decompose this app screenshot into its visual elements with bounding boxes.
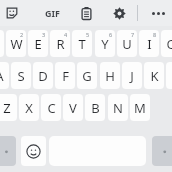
staticText: 5 [86,31,90,38]
button[interactable]: L [166,62,172,89]
button[interactable]: F [55,62,75,89]
staticText: T [78,35,86,53]
staticText: 2 [20,31,24,38]
staticText: O [166,35,172,53]
staticText: 3 [42,31,46,38]
staticText: M [134,99,146,117]
button[interactable]: N [108,94,128,121]
staticText: E [34,35,42,53]
button[interactable]: Backspace [152,136,172,166]
staticText: X [25,99,33,117]
button[interactable]: More options [147,2,169,24]
button[interactable]: I [139,30,159,57]
staticText: F [62,67,69,85]
staticText: J [130,67,134,85]
staticText: R [56,35,65,53]
staticText: Y [101,35,109,53]
button[interactable]: Q [0,30,4,57]
button[interactable]: Y [95,30,115,57]
staticText: B [91,99,100,117]
button[interactable]: U [117,30,137,57]
button[interactable]: K [144,62,164,89]
button[interactable]: E [28,30,48,57]
button[interactable]: J [122,62,142,89]
staticText: Z [3,99,11,117]
staticText: GIF [45,7,60,19]
button[interactable]: M [130,94,150,121]
button[interactable]: O [161,30,172,57]
staticText: K [150,67,159,85]
button[interactable]: Settings [108,2,130,24]
button[interactable]: R [50,30,70,57]
button[interactable]: S [11,62,31,89]
button[interactable]: V [63,94,83,121]
button[interactable]: D [33,62,53,89]
staticText: D [38,67,48,85]
staticText: 6 [109,31,113,38]
staticText: G [82,67,92,85]
staticText: H [105,67,115,85]
button[interactable]: GIF [38,2,66,24]
staticText: N [113,99,123,117]
button[interactable]: X [19,94,39,121]
staticText: V [69,99,77,117]
button[interactable]: C [41,94,61,121]
staticText: 7 [131,31,135,38]
button[interactable]: Stickers [1,2,23,24]
staticText: I [147,35,152,53]
button[interactable]: B [85,94,105,121]
button[interactable]: Shift [0,136,16,166]
staticText: W [10,35,23,53]
staticText: U [122,35,132,53]
staticText: 8 [153,31,157,38]
button[interactable]: W [6,30,26,57]
button[interactable]: H [100,62,120,89]
button[interactable]: T [72,30,92,57]
button[interactable]: Clipboard [75,2,97,24]
button[interactable]: A [0,62,9,89]
button[interactable]: Emoji [21,136,46,166]
button[interactable]: G [77,62,97,89]
button[interactable]: Z [0,94,17,121]
staticText: S [17,67,25,85]
staticText: 4 [64,31,68,38]
staticText: C [47,99,56,117]
staticText: A [0,67,4,85]
